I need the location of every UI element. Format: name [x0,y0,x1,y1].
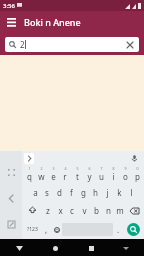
staticText: r [63,171,67,182]
button[interactable]: Clear search [125,40,135,50]
staticText: e [51,171,56,182]
staticText: u [99,171,104,182]
button[interactable]: 5 [71,165,83,183]
staticText: h [93,187,98,198]
staticText: w [38,171,45,182]
staticText: 2 [20,39,25,50]
button[interactable]: Resize keyboard [4,165,18,179]
staticText: 6 [88,166,91,171]
button[interactable]: 9 [119,165,131,183]
button[interactable]: Home [48,241,62,255]
button[interactable]: Back [12,241,26,255]
button[interactable]: Voice input [129,153,140,164]
staticText: 8 [112,166,115,171]
button[interactable]: Search [127,223,140,236]
staticText: 2 [40,166,43,171]
button[interactable]: 6 [83,165,95,183]
staticText: k [117,187,122,198]
button[interactable]: a [29,183,41,201]
button[interactable]: n [102,201,114,220]
button[interactable]: ?123 [23,221,41,238]
staticText: , [45,224,48,235]
button[interactable]: c [66,201,78,220]
staticText: f [70,187,73,198]
button[interactable]: l [125,183,137,201]
button[interactable]: k [113,183,125,201]
button[interactable]: Shift [23,201,41,220]
staticText: 3:56 [3,2,15,10]
button[interactable]: 3 [47,165,59,183]
staticText: 0 [136,166,139,171]
button[interactable]: g [77,183,89,201]
button[interactable]: Handwriting input [4,217,18,231]
staticText: s [45,187,49,198]
staticText: 5 [76,166,79,171]
button[interactable]: f [65,183,77,201]
staticText: ?123 [27,226,38,233]
staticText: d [57,187,62,198]
button[interactable]: j [101,183,113,201]
button[interactable]: v [78,201,90,220]
staticText: g [81,187,86,198]
button[interactable]: h [89,183,101,201]
button[interactable]: z [41,201,54,220]
staticText: Boki n Anene [24,16,81,28]
button[interactable]: 2 [35,165,47,183]
button[interactable]: s [41,183,53,201]
button[interactable]: , [41,221,51,238]
staticText: m [116,205,124,216]
button[interactable]: 8 [107,165,119,183]
button[interactable]: Backspace [126,201,143,220]
staticText: i [112,171,115,182]
staticText: a [33,187,38,198]
staticText: t [76,171,79,182]
button[interactable]: x [54,201,66,220]
staticText: p [135,171,140,182]
staticText: l [130,187,133,198]
button[interactable]: Hide keyboard [120,242,132,254]
button[interactable]: 0 [131,165,143,183]
button[interactable]: d [53,183,65,201]
staticText: 1 [28,166,31,171]
staticText: y [87,171,92,182]
staticText: b [94,205,99,216]
button[interactable]: Move left [4,191,18,205]
staticText: n [106,205,111,216]
staticText: c [70,205,74,216]
staticText: q [27,171,32,182]
staticText: . [117,224,120,235]
button[interactable]: Open navigation menu [4,15,18,29]
button[interactable]: 4 [59,165,71,183]
button[interactable]: 7 [95,165,107,183]
button[interactable]: . [113,221,123,238]
staticText: o [123,171,128,182]
staticText: 7 [100,166,103,171]
button[interactable]: b [90,201,102,220]
button[interactable]: Expand toolbar [24,153,34,164]
staticText: 4 [64,166,67,171]
staticText: j [106,187,109,198]
button[interactable]: Recent apps [84,241,98,255]
staticText: z [46,205,50,216]
button[interactable]: 1 [23,165,35,183]
staticText: x [58,205,63,216]
button[interactable]: m [114,201,126,220]
button[interactable]: 2 [5,37,139,52]
button[interactable]: Emoji [51,221,62,238]
staticText: 9 [124,166,127,171]
staticText: v [82,205,87,216]
staticText: 3 [52,166,55,171]
